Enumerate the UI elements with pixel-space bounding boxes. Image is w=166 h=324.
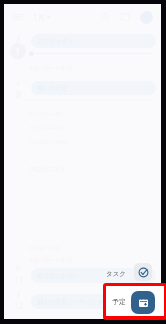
staticText: 予定 <box>112 297 126 306</box>
button[interactable]: 個人の予定ミーティング <box>31 294 156 309</box>
button[interactable]: 予定を追加 <box>131 291 155 314</box>
button[interactable]: タスクを追加 <box>134 263 152 281</box>
staticText: タスク <box>106 270 126 278</box>
button[interactable] <box>103 265 127 282</box>
button[interactable]: アカウント <box>140 11 153 24</box>
staticText: 個人の予定ミーティング <box>37 298 104 306</box>
button[interactable]: 誕生日のお祝い <box>31 268 156 283</box>
